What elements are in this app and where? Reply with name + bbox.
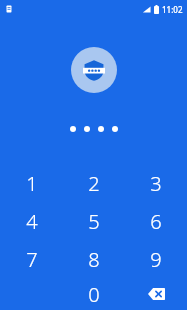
staticText: 11:02 xyxy=(162,4,183,15)
button[interactable]: 1 xyxy=(0,164,63,202)
button[interactable]: 8 xyxy=(63,240,125,278)
button[interactable]: 9 xyxy=(125,240,187,278)
button[interactable]: 4 xyxy=(0,202,63,240)
staticText: 4 xyxy=(26,208,38,235)
button[interactable]: 0 xyxy=(63,278,125,310)
button[interactable]: 7 xyxy=(0,240,63,278)
staticText: 9 xyxy=(150,246,162,273)
button[interactable]: Backspace xyxy=(125,278,187,310)
staticText: 2 xyxy=(88,170,100,197)
staticText: 0 xyxy=(88,281,100,308)
staticText: 7 xyxy=(26,246,38,273)
button[interactable]: 5 xyxy=(63,202,125,240)
staticText: 8 xyxy=(88,246,100,273)
button[interactable]: 6 xyxy=(125,202,187,240)
staticText: 5 xyxy=(88,208,100,235)
staticText: 6 xyxy=(150,208,162,235)
button[interactable]: 2 xyxy=(63,164,125,202)
staticText: 3 xyxy=(150,170,162,197)
button[interactable]: 3 xyxy=(125,164,187,202)
staticText: 1 xyxy=(26,170,38,197)
